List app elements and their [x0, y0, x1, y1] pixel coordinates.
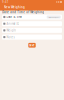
button[interactable]: Animal ID — [0, 21, 64, 26]
button[interactable]: Save — [28, 43, 36, 48]
staticText: 9:41 — [2, 0, 9, 4]
button[interactable]: Weight — [0, 28, 64, 33]
staticText: Date & Time — [6, 15, 22, 19]
staticText: Save — [29, 43, 35, 47]
staticText: Notes — [6, 35, 14, 39]
button[interactable]: Date & Time — [0, 14, 64, 19]
staticText: New Weighing — [4, 5, 25, 9]
button[interactable]: Notes — [0, 35, 64, 40]
staticText: Weight — [6, 29, 16, 32]
staticText: Animal ID — [6, 22, 19, 25]
staticText: 14 Jan 2025, 09:41 — [48, 16, 60, 18]
staticText: Date and Time of Weighing — [2, 10, 44, 14]
